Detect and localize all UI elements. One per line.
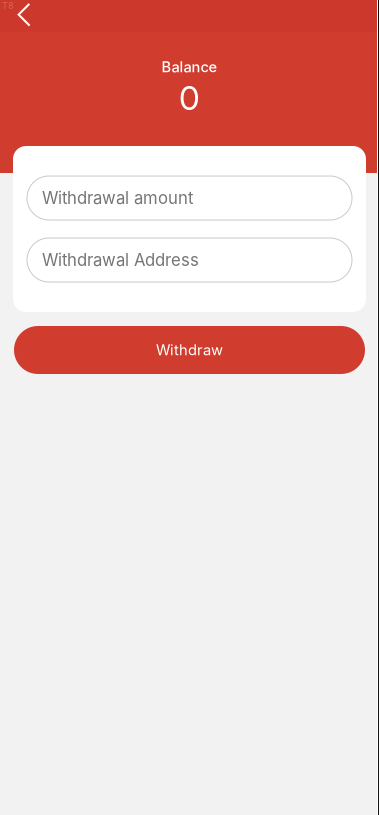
staticText: 0 bbox=[179, 78, 200, 118]
button[interactable]: Withdraw bbox=[14, 326, 365, 374]
staticText: Withdrawal amount bbox=[42, 188, 193, 208]
staticText: Withdraw bbox=[156, 341, 223, 359]
staticText: T8 bbox=[2, 0, 14, 11]
staticText: Balance bbox=[161, 58, 217, 76]
button[interactable]: Back bbox=[2, 0, 46, 30]
staticText: Withdrawal Address bbox=[42, 250, 199, 270]
